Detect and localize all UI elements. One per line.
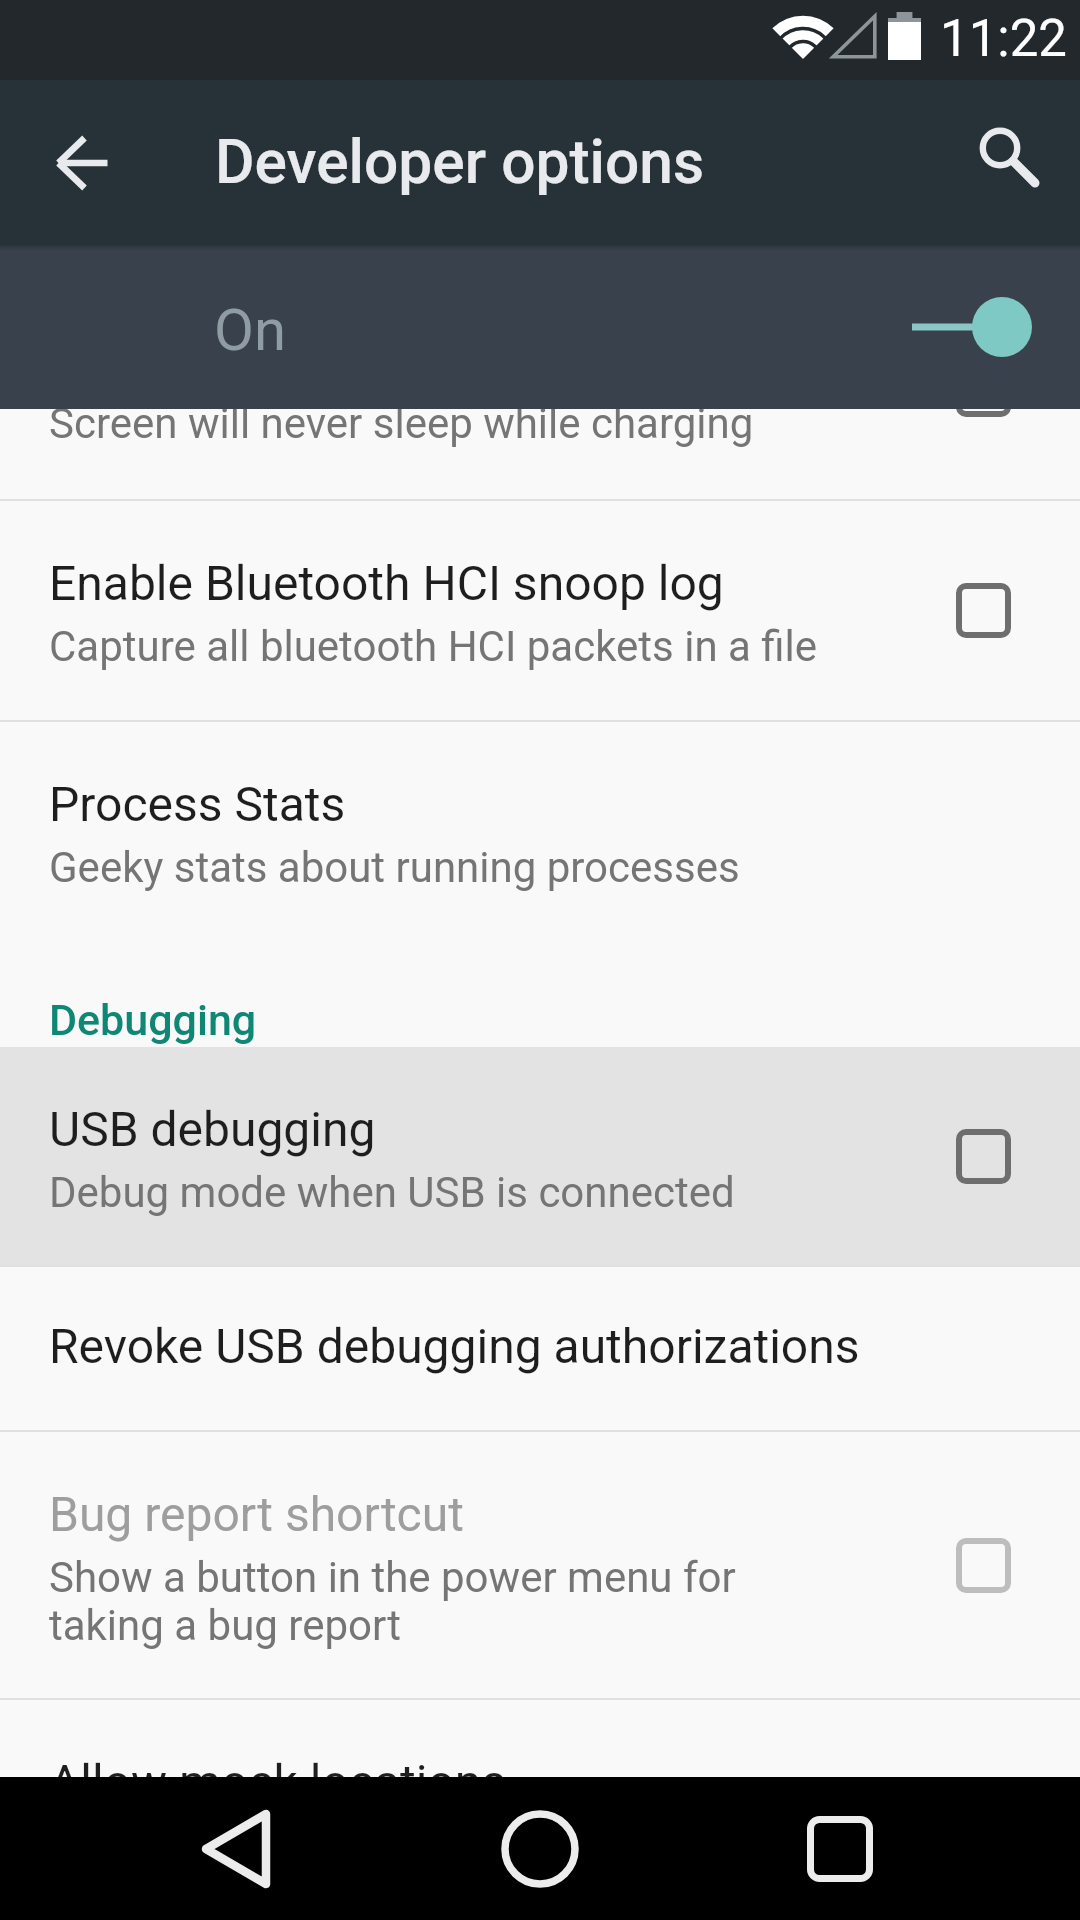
- staticText: Show a button in the power menu for taki…: [49, 1553, 736, 1650]
- staticText: Revoke USB debugging authorizations: [49, 1318, 860, 1374]
- button[interactable]: Navigate up: [35, 115, 131, 211]
- button[interactable]: Process Stats: [0, 722, 1080, 940]
- button[interactable]: Revoke USB debugging authorizations: [0, 1267, 1080, 1430]
- staticText: Capture all bluetooth HCI packets in a f…: [49, 622, 818, 671]
- staticText: Developer options: [215, 127, 705, 198]
- button[interactable]: Enable Bluetooth HCI snoop log: [0, 501, 1080, 720]
- button[interactable]: Search: [960, 111, 1064, 215]
- staticText: Allow mock locations: [49, 1754, 507, 1810]
- staticText: On: [214, 296, 286, 364]
- button[interactable]: Back: [136, 1782, 336, 1915]
- button[interactable]: Bug report shortcut: [0, 1432, 1080, 1698]
- staticText: Debug mode when USB is connected: [49, 1168, 735, 1217]
- button[interactable]: Recent apps: [740, 1782, 940, 1915]
- staticText: Enable Bluetooth HCI snoop log: [49, 555, 724, 611]
- staticText: Process Stats: [49, 776, 346, 832]
- staticText: 11:22: [940, 9, 1068, 69]
- staticText: USB debugging: [49, 1101, 376, 1157]
- staticText: Screen will never sleep while charging: [49, 409, 754, 448]
- button[interactable]: On: [0, 245, 1080, 409]
- staticText: Geeky stats about running processes: [49, 843, 740, 892]
- button[interactable]: Home: [440, 1782, 640, 1915]
- staticText: Debugging: [49, 995, 257, 1045]
- button[interactable]: Screen will never sleep while charging: [0, 409, 1080, 499]
- staticText: Allow mock locations: [49, 1821, 450, 1870]
- button[interactable]: Allow mock locations: [0, 1700, 1080, 1918]
- staticText: Bug report shortcut: [49, 1486, 464, 1542]
- button[interactable]: USB debugging: [0, 1047, 1080, 1265]
